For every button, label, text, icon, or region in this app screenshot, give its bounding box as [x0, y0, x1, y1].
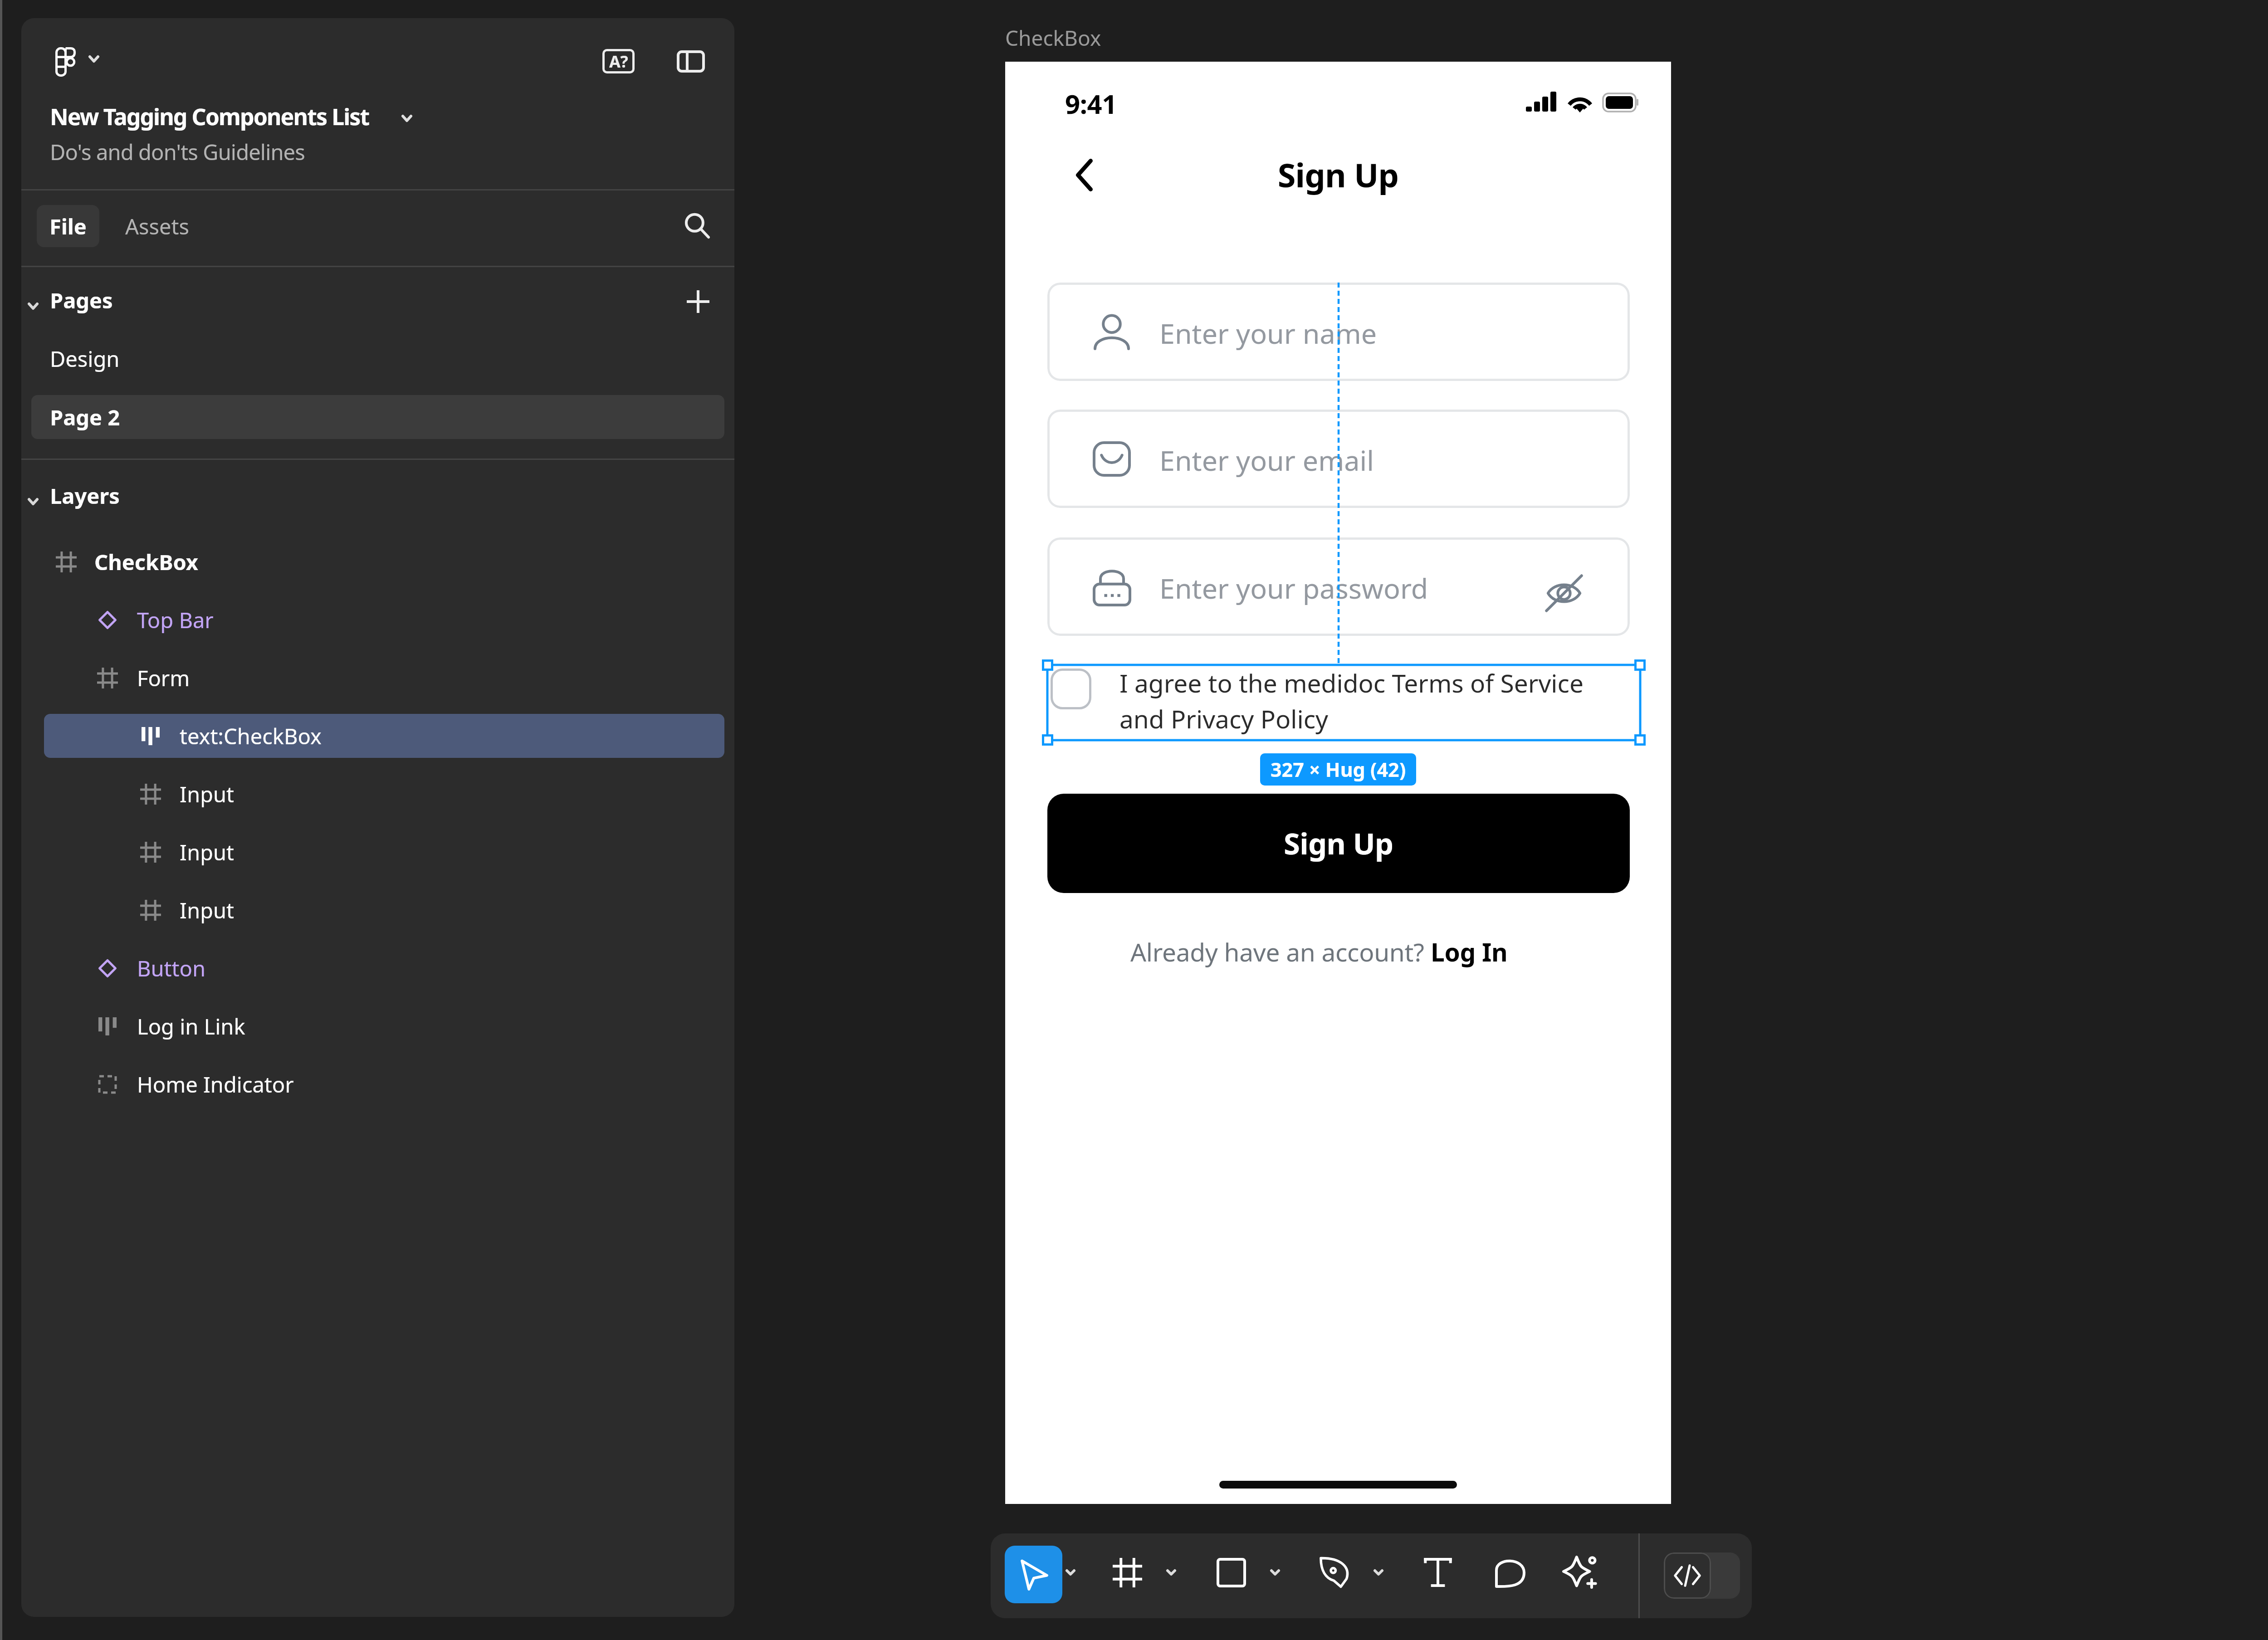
- button[interactable]: Figma menu: [44, 40, 87, 83]
- button[interactable]: Pen tool: [1307, 1545, 1362, 1600]
- staticText: Sign Up: [1284, 823, 1393, 864]
- button[interactable]: Toggle panel: [677, 50, 705, 73]
- staticText: Design: [50, 344, 120, 373]
- button[interactable]: Frame tool options: [1158, 1559, 1185, 1586]
- button[interactable]: Text tool: [1411, 1545, 1465, 1600]
- button[interactable]: Enter your email: [1047, 410, 1630, 508]
- staticText: Already have an account?: [1130, 935, 1431, 969]
- button[interactable]: A?: [602, 49, 635, 73]
- staticText: File: [49, 212, 87, 241]
- button[interactable]: Enter your password: [1047, 537, 1630, 636]
- staticText: Assets: [125, 212, 190, 241]
- staticText: Form: [137, 664, 190, 693]
- button[interactable]: Add comment: [1483, 1545, 1537, 1600]
- staticText: Layers: [50, 481, 120, 510]
- button[interactable]: Design: [31, 337, 724, 381]
- staticText: 327 × Hug (42): [1271, 756, 1406, 783]
- button[interactable]: Pen tool options: [1365, 1559, 1392, 1586]
- button[interactable]: Move tool: [1005, 1546, 1062, 1603]
- button[interactable]: Sign Up: [1047, 794, 1630, 893]
- button[interactable]: Button: [44, 946, 724, 990]
- staticText: Pages: [50, 286, 113, 315]
- button[interactable]: Form: [44, 656, 724, 700]
- button[interactable]: Top Bar: [44, 598, 724, 642]
- button[interactable]: Dev mode: [1664, 1552, 1740, 1599]
- button[interactable]: Log in Link: [44, 1004, 724, 1048]
- button[interactable]: Search: [677, 206, 717, 246]
- staticText: Button: [137, 954, 206, 983]
- button[interactable]: File: [37, 205, 99, 247]
- button[interactable]: Shape tool options: [1261, 1559, 1289, 1586]
- button[interactable]: Input: [44, 830, 724, 874]
- staticText: Enter your password: [1159, 569, 1428, 607]
- button[interactable]: Frame tool: [1100, 1545, 1154, 1600]
- staticText: Input: [180, 896, 234, 925]
- button[interactable]: Show password: [1543, 572, 1585, 614]
- button[interactable]: Page 2: [31, 395, 724, 439]
- staticText: Page 2: [50, 403, 120, 432]
- button[interactable]: Log In: [1431, 935, 1508, 969]
- staticText: CheckBox: [1005, 24, 1101, 52]
- button[interactable]: Shape tool: [1204, 1545, 1258, 1600]
- staticText: Log in Link: [137, 1012, 245, 1041]
- staticText: New Tagging Components List: [50, 101, 369, 132]
- button[interactable]: Move tool options: [1057, 1559, 1084, 1586]
- button[interactable]: Assets: [114, 205, 200, 247]
- button[interactable]: Add page: [679, 283, 717, 320]
- staticText: text:CheckBox: [180, 722, 322, 751]
- button[interactable]: Home Indicator: [44, 1062, 724, 1106]
- staticText: Top Bar: [137, 605, 214, 635]
- button[interactable]: Back: [1061, 149, 1107, 201]
- staticText: Home Indicator: [137, 1070, 294, 1099]
- button[interactable]: Enter your name: [1047, 283, 1630, 381]
- button[interactable]: Input: [44, 772, 724, 816]
- staticText: CheckBox: [94, 547, 199, 576]
- staticText: Enter your email: [1159, 441, 1374, 479]
- staticText: Input: [180, 838, 234, 867]
- staticText: Enter your name: [1159, 314, 1377, 352]
- staticText: Do's and don'ts Guidelines: [50, 137, 305, 166]
- button[interactable]: I agree to the medidoc Terms of Service …: [1051, 666, 1642, 736]
- button[interactable]: Input: [44, 888, 724, 932]
- staticText: Sign Up: [1005, 152, 1671, 197]
- staticText: I agree to the medidoc Terms of Service …: [1119, 666, 1584, 736]
- button[interactable]: text:CheckBox: [44, 714, 724, 758]
- staticText: 9:41: [1065, 86, 1117, 122]
- button[interactable]: Actions: [1553, 1545, 1607, 1600]
- staticText: A?: [609, 50, 628, 73]
- button[interactable]: CheckBox: [44, 540, 724, 584]
- staticText: Input: [180, 780, 234, 809]
